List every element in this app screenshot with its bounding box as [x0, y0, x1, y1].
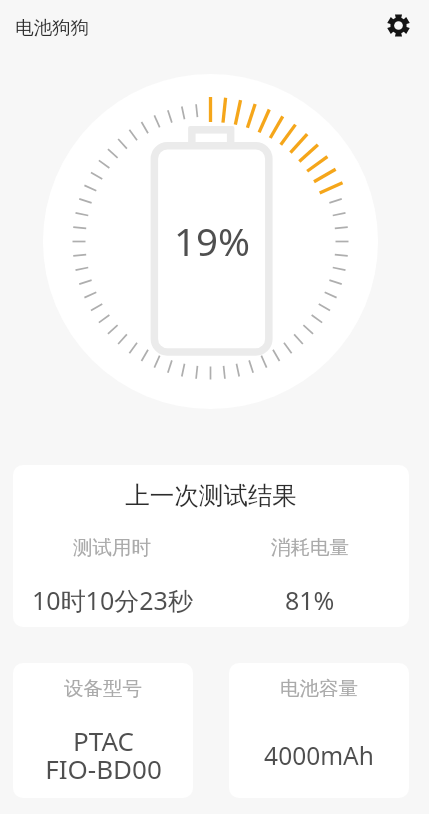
- button[interactable]: 电池容量: [229, 663, 409, 798]
- button[interactable]: 设备型号: [13, 663, 193, 798]
- staticText: 电池狗狗: [15, 16, 89, 39]
- staticText: 消耗电量: [271, 535, 349, 560]
- staticText: 10时10分23秒: [32, 583, 193, 617]
- staticText: 4000mAh: [264, 739, 374, 772]
- staticText: 设备型号: [64, 676, 142, 701]
- button[interactable]: 上一次测试结果: [13, 465, 409, 627]
- staticText: 81%: [285, 583, 335, 617]
- staticText: 19%: [174, 215, 251, 267]
- staticText: 上一次测试结果: [13, 480, 409, 511]
- button[interactable]: Settings: [381, 8, 415, 42]
- staticText: PTAC FIO-BD00: [45, 723, 162, 787]
- staticText: 测试用时: [73, 535, 151, 560]
- staticText: 电池容量: [280, 676, 358, 701]
